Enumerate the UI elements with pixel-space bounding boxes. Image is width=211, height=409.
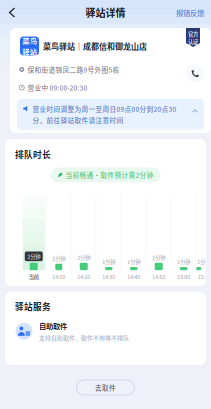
staticText: 15:00 — [177, 273, 190, 280]
button[interactable]: 拨打电话 — [186, 65, 204, 83]
staticText: 菜 — [22, 35, 29, 46]
staticText: 菜鸟驿站｜成都信和御龙山店 — [43, 40, 147, 52]
staticText: 15: — [198, 273, 205, 280]
staticText: 驿站服务 — [15, 300, 51, 312]
staticText: 14:20 — [77, 273, 90, 280]
staticText: 站 — [30, 46, 37, 57]
staticText: 自助取件 — [39, 320, 67, 331]
staticText: 2分钟 — [152, 253, 165, 261]
staticText: 营业时间调整为周一至周日09点00分到20点30 — [32, 104, 176, 114]
staticText: 1分钟 — [177, 258, 190, 265]
staticText: 1分 — [197, 258, 205, 265]
button[interactable]: 报错反馈 — [170, 1, 211, 24]
staticText: 1分钟 — [127, 258, 140, 265]
staticText: 官方 — [188, 30, 198, 38]
staticText: 保和街道锦凤二路9号外图5栋 — [27, 65, 119, 74]
button[interactable]: 自助取件 — [5, 312, 206, 348]
staticText: 驿 — [22, 46, 29, 57]
staticText: 分，前往驿站取件请注意时间 — [32, 115, 123, 125]
staticText: 营业中 09:00-20:30 — [27, 83, 87, 92]
button[interactable]: 返回 — [0, 1, 24, 24]
staticText: 报错反馈 — [176, 7, 204, 18]
staticText: 14:40 — [127, 273, 140, 280]
staticText: 当前畅通·取件预计需2分钟 — [65, 170, 153, 180]
staticText: 支持自助取件、取件不用等不排队 — [39, 333, 129, 342]
staticText: 2分钟 — [27, 252, 40, 260]
staticText: 去取件 — [95, 383, 116, 392]
staticText: 1分钟 — [102, 258, 115, 265]
staticText: 当前 — [29, 273, 39, 280]
staticText: 驿站详情 — [85, 5, 125, 20]
staticText: 排队时长 — [15, 148, 51, 160]
staticText: 认证 — [188, 38, 198, 45]
staticText: 14:50 — [152, 273, 165, 280]
staticText: 2分钟 — [77, 253, 90, 261]
staticText: 鸟 — [30, 35, 37, 46]
staticText: 2分钟 — [52, 254, 65, 262]
staticText: 14:30 — [102, 273, 115, 280]
staticText: 14:10 — [52, 273, 65, 280]
button[interactable]: 去取件 — [76, 380, 134, 395]
